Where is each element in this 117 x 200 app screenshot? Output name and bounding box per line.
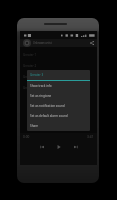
- staticText: Greater 4: [23, 86, 37, 90]
- staticText: Set as notification sound: [30, 104, 65, 108]
- button[interactable]: Share: [27, 121, 90, 131]
- staticText: Unknown artist: [33, 41, 52, 45]
- staticText: 3:41: [87, 135, 94, 139]
- staticText: Greater 1: [23, 53, 37, 57]
- staticText: Share: [30, 124, 39, 128]
- staticText: Greater 3: [23, 75, 37, 79]
- staticText: Greater 3: [30, 73, 44, 77]
- button[interactable]: Previous: [36, 141, 47, 152]
- button[interactable]: Greater 4: [20, 82, 97, 93]
- button[interactable]: Play: [53, 141, 64, 152]
- button[interactable]: Greater 3: [27, 70, 90, 81]
- staticText: 0:00: [23, 135, 30, 139]
- button[interactable]: Set as default alarm sound: [27, 111, 90, 121]
- button[interactable]: Share: [88, 39, 96, 47]
- button[interactable]: Greater 2: [20, 60, 97, 71]
- staticText: Set as ringtone: [30, 94, 52, 98]
- button[interactable]: Set as notification sound: [27, 101, 90, 111]
- staticText: Show track info: [30, 84, 52, 88]
- button[interactable]: Next: [70, 141, 81, 152]
- button[interactable]: Show track info: [27, 81, 90, 91]
- staticText: Greater 2: [23, 64, 37, 68]
- button[interactable]: Set as ringtone: [27, 91, 90, 101]
- staticText: Set as default alarm sound: [30, 114, 68, 118]
- button[interactable]: Greater 3: [20, 71, 97, 82]
